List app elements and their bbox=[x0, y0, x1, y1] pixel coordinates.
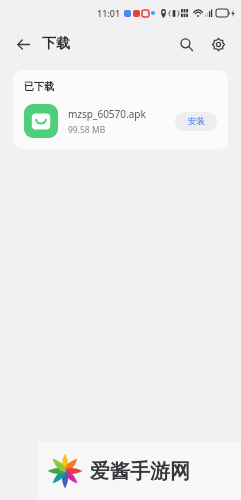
staticText: 下载 bbox=[42, 35, 70, 53]
staticText: mzsp_60570.apk bbox=[68, 107, 146, 121]
button[interactable]: 安装 bbox=[175, 112, 217, 131]
button[interactable]: Settings bbox=[205, 31, 231, 57]
staticText: 安装 bbox=[188, 116, 205, 127]
button[interactable]: mzsp_60570.apk bbox=[24, 104, 217, 138]
staticText: 11:01 bbox=[97, 7, 121, 19]
staticText: 已下载 bbox=[24, 80, 54, 93]
staticText: 爱酱手游网 bbox=[90, 459, 190, 484]
staticText: 99.58 MB bbox=[68, 124, 106, 136]
button[interactable]: Back bbox=[10, 31, 36, 57]
button[interactable]: Search bbox=[173, 31, 199, 57]
